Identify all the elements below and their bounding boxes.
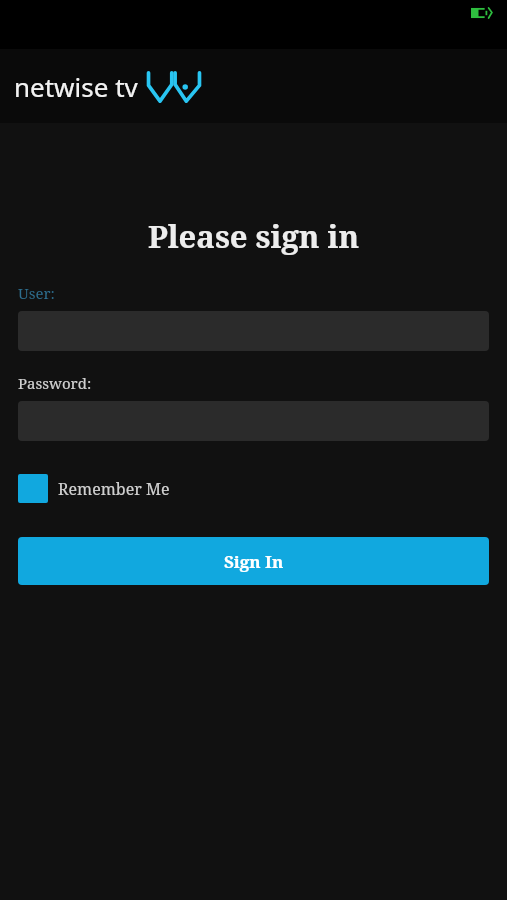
staticText: netwise tv [14,69,138,104]
button[interactable]: Remember Me [18,474,170,503]
staticText: Please sign in [0,215,507,257]
button[interactable]: Sign In [18,537,489,585]
staticText: Remember Me [58,478,170,500]
staticText: User: [18,283,55,303]
staticText: Sign In [224,550,284,573]
staticText: Password: [18,373,92,393]
